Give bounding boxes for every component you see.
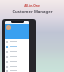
button[interactable] xyxy=(5,59,29,64)
button[interactable] xyxy=(5,44,29,49)
button[interactable] xyxy=(5,39,29,44)
staticText: All-in-One xyxy=(24,4,40,8)
button[interactable] xyxy=(5,49,29,54)
button[interactable] xyxy=(5,54,29,59)
button[interactable] xyxy=(5,64,29,69)
staticText: Customer Manager xyxy=(12,9,53,15)
button[interactable] xyxy=(5,69,29,72)
